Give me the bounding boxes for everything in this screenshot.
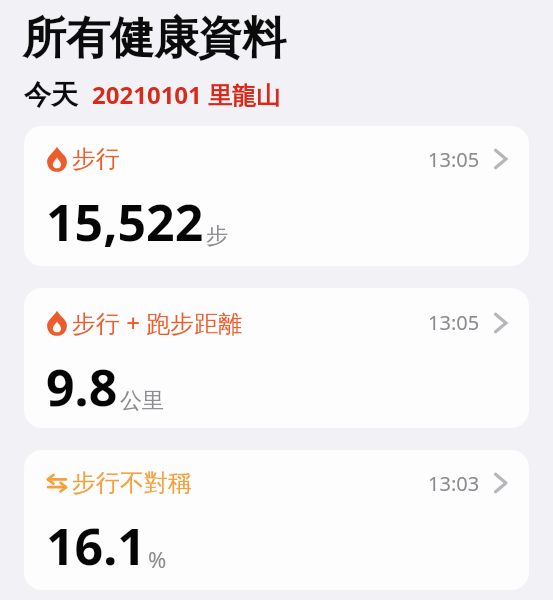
staticText: 所有健康資料 bbox=[22, 11, 286, 66]
staticText: 16.1 bbox=[46, 512, 146, 580]
staticText: 步行 + 跑步距離 bbox=[72, 306, 243, 339]
staticText: 步 bbox=[206, 222, 228, 250]
staticText: 15,522 bbox=[46, 188, 204, 256]
button[interactable]: 步行 15,522 步 bbox=[24, 126, 529, 266]
staticText: 9.8 bbox=[46, 353, 118, 421]
staticText: 13:03 bbox=[428, 470, 480, 497]
button[interactable]: 步行加跑步距離 9.8 公里 bbox=[24, 288, 529, 428]
button[interactable]: 步行不對稱 16.1 % bbox=[24, 450, 529, 590]
staticText: 20210101 里龍山 bbox=[92, 78, 281, 111]
staticText: 公里 bbox=[120, 387, 164, 415]
staticText: 步行 bbox=[72, 144, 120, 174]
staticText: 步行不對稱 bbox=[72, 468, 192, 498]
staticText: 13:05 bbox=[428, 309, 480, 336]
staticText: % bbox=[148, 544, 167, 574]
staticText: 13:05 bbox=[428, 146, 480, 173]
staticText: 今天 bbox=[24, 78, 78, 112]
